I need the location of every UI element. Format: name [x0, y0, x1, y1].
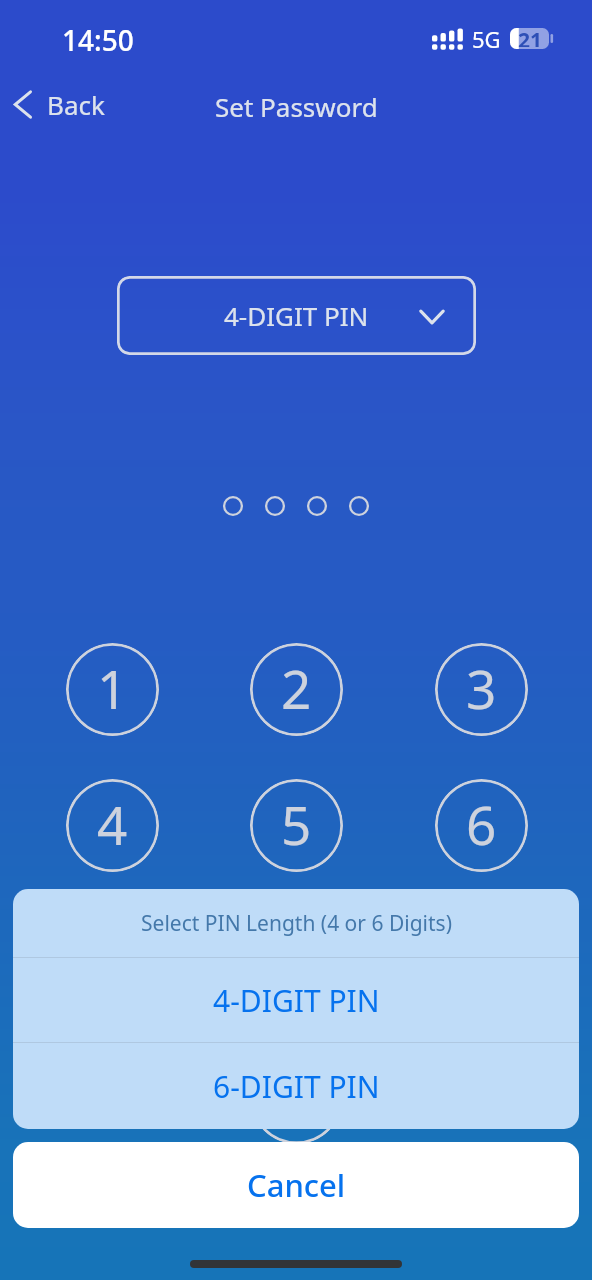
button[interactable]: 7: [66, 915, 159, 1008]
button[interactable]: Cancel: [13, 1142, 579, 1228]
button[interactable]: 5: [250, 779, 343, 872]
staticText: 1: [97, 652, 128, 724]
button[interactable]: 6-DIGIT PIN: [13, 1043, 579, 1129]
other: Cellular signal: [432, 28, 464, 50]
button[interactable]: 8: [250, 915, 343, 1008]
button[interactable]: 9: [435, 915, 528, 1008]
button[interactable]: 3: [435, 643, 528, 736]
staticText: Set Password: [215, 89, 378, 124]
button[interactable]: 6: [435, 779, 528, 872]
button[interactable]: 4: [66, 779, 159, 872]
button[interactable]: 0: [250, 1051, 343, 1144]
staticText: 6-DIGIT PIN: [213, 1066, 380, 1107]
staticText: 4: [97, 788, 128, 860]
staticText: Cancel: [247, 1164, 346, 1206]
staticText: 0: [281, 1060, 312, 1132]
staticText: 5: [281, 788, 312, 860]
staticText: Back: [47, 87, 105, 122]
staticText: 21: [518, 26, 543, 47]
staticText: Select PIN Length (4 or 6 Digits): [141, 909, 452, 938]
button[interactable]: Back: [6, 83, 112, 126]
button[interactable]: 4-DIGIT PIN: [13, 958, 579, 1042]
other: Battery 21 percent: [510, 28, 554, 50]
button[interactable]: 1: [66, 643, 159, 736]
staticText: 4-DIGIT PIN: [213, 980, 380, 1021]
staticText: 6: [466, 788, 497, 860]
button[interactable]: 4-DIGIT PIN: [117, 276, 476, 355]
staticText: 5G: [472, 24, 501, 54]
staticText: 4-DIGIT PIN: [224, 298, 369, 333]
staticText: 2: [281, 652, 312, 724]
staticText: 8: [281, 924, 312, 996]
staticText: 3: [466, 652, 497, 724]
button[interactable]: 2: [250, 643, 343, 736]
staticText: 14:50: [62, 21, 134, 59]
